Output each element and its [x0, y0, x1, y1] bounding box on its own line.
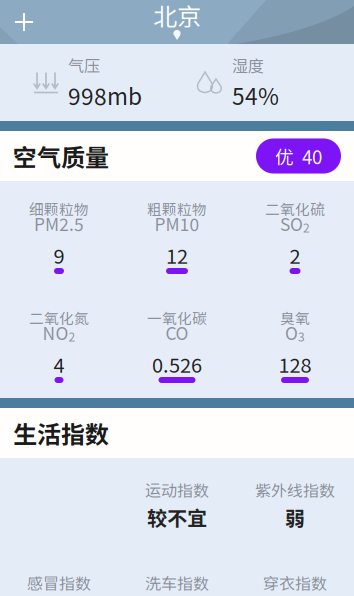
staticText: 二氧化氮 — [29, 307, 89, 328]
staticText: 12 — [166, 240, 188, 269]
staticText: 较不宜 — [147, 502, 207, 531]
staticText: 优 40 — [275, 142, 322, 169]
staticText: 运动指数 — [145, 478, 209, 501]
staticText: 生活指数 — [13, 416, 109, 450]
staticText: 2 — [289, 240, 300, 269]
button[interactable]: Add city — [0, 0, 48, 44]
staticText: 4 — [53, 349, 64, 378]
staticText: O — [285, 320, 298, 345]
staticText: 一氧化碳 — [147, 307, 207, 328]
staticText: 气压 — [68, 53, 100, 77]
staticText: 9 — [53, 240, 64, 269]
staticText: PM2.5 — [34, 211, 84, 236]
staticText: 感冒指数 — [27, 571, 91, 594]
staticText: 0.526 — [152, 349, 202, 378]
button[interactable]: 优 40 — [256, 138, 341, 173]
staticText: PM10 — [154, 211, 199, 236]
staticText: 紫外线指数 — [255, 478, 335, 501]
staticText: 空气质量 — [13, 139, 109, 173]
staticText: 弱 — [285, 502, 305, 531]
staticText: 穿衣指数 — [263, 571, 327, 594]
staticText: 3 — [298, 328, 305, 345]
staticText: 2 — [68, 328, 75, 345]
staticText: 998mb — [68, 79, 142, 111]
staticText: 128 — [278, 349, 311, 378]
staticText: 粗颗粒物 — [147, 198, 207, 219]
staticText: 细颗粒物 — [29, 198, 89, 219]
staticText: 湿度 — [232, 53, 264, 77]
staticText: CO — [165, 320, 188, 345]
staticText: 洗车指数 — [145, 571, 209, 594]
staticText: 二氧化硫 — [265, 198, 325, 219]
staticText: 2 — [303, 219, 310, 236]
staticText: 北京 — [153, 0, 201, 32]
staticText: SO — [280, 211, 303, 236]
staticText: NO — [42, 320, 68, 345]
staticText: 臭氧 — [280, 307, 310, 328]
staticText: 54% — [232, 79, 279, 111]
